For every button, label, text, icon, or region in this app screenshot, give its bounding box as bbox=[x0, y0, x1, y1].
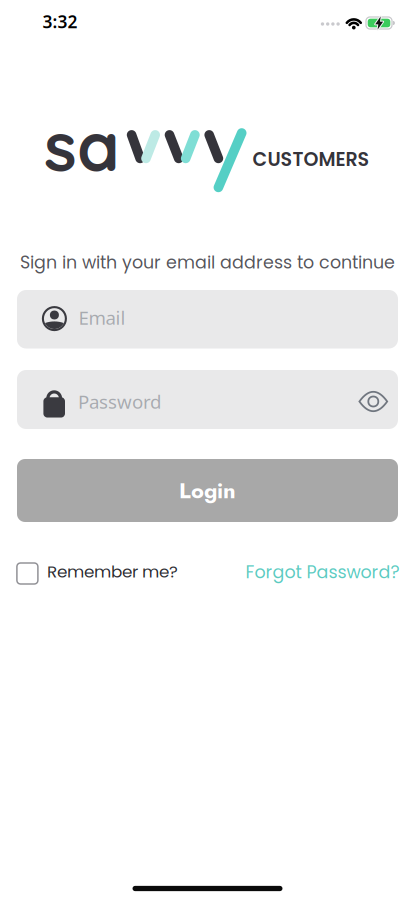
button[interactable]: Remember me? bbox=[17, 562, 178, 585]
staticText: Forgot Password? bbox=[246, 560, 400, 584]
staticText: 3:32 bbox=[42, 10, 77, 33]
staticText: CUSTOMERS bbox=[252, 146, 369, 173]
staticText: sa bbox=[44, 103, 120, 188]
button[interactable]: Password bbox=[17, 370, 398, 429]
staticText: Password bbox=[78, 389, 161, 414]
button[interactable]: Forgot Password? bbox=[246, 560, 400, 584]
staticText: Login bbox=[179, 475, 236, 506]
staticText: Sign in with your email address to conti… bbox=[20, 250, 395, 275]
button[interactable]: Login bbox=[17, 459, 398, 522]
staticText: Email bbox=[78, 305, 125, 330]
staticText: Remember me? bbox=[47, 560, 178, 583]
button[interactable]: Email bbox=[17, 290, 398, 348]
